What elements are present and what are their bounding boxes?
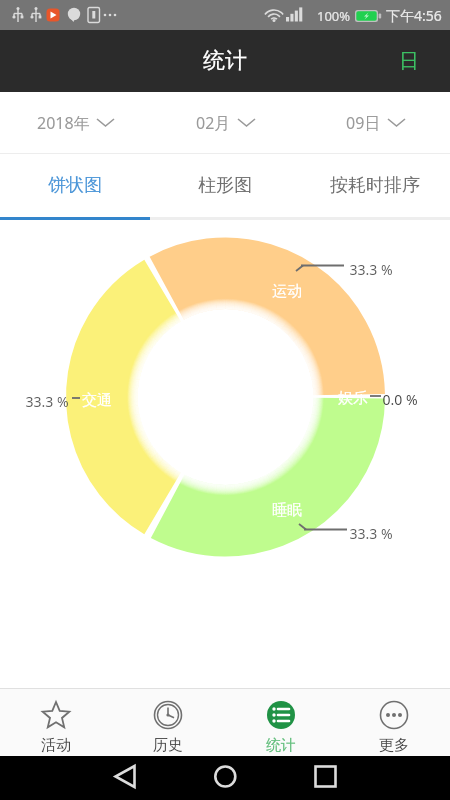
staticText: 100% (317, 7, 351, 25)
staticText: 历史 (153, 736, 183, 755)
staticText: 02月 (196, 112, 231, 134)
button[interactable]: 活动 (0, 689, 112, 756)
staticText: 下午4:56 (386, 6, 442, 25)
button[interactable]: 饼状图 (0, 154, 150, 217)
staticText: 按耗时排序 (330, 174, 420, 197)
button[interactable]: 历史 (112, 689, 224, 756)
staticText: 活动 (41, 736, 71, 755)
staticText: 睡眠 (272, 501, 302, 520)
staticText: 33.3 % (25, 392, 69, 411)
staticText: 柱形图 (198, 174, 252, 197)
staticText: 饼状图 (48, 174, 102, 197)
staticText: 统计 (266, 736, 296, 755)
button[interactable]: 更多 (337, 689, 450, 756)
staticText: 0.0 % (382, 390, 418, 409)
staticText: 交通 (82, 391, 112, 410)
button[interactable]: 02月 (150, 92, 300, 153)
button[interactable]: 09日 (300, 92, 450, 153)
staticText: 统计 (203, 47, 247, 75)
staticText: 33.3 % (349, 524, 393, 543)
button[interactable]: 统计 (224, 689, 337, 756)
staticText: 33.3 % (349, 260, 393, 279)
staticText: 2018年 (37, 112, 90, 134)
staticText: 09日 (346, 112, 381, 134)
button[interactable]: 按耗时排序 (300, 154, 450, 217)
staticText: 娱乐 (338, 389, 368, 408)
button[interactable]: 柱形图 (150, 154, 300, 217)
staticText: 日 (399, 49, 419, 74)
button[interactable]: 2018年 (0, 92, 150, 153)
button[interactable]: 按日查看 (385, 37, 433, 85)
staticText: 运动 (272, 282, 302, 301)
staticText: 更多 (379, 736, 409, 755)
